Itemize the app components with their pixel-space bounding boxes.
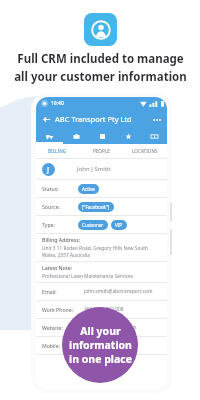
button[interactable]: Back	[41, 114, 52, 125]
button[interactable]: Tab 1	[36, 129, 63, 144]
staticText: PEOPLE	[93, 148, 110, 154]
button[interactable]: Work Phone:	[42, 301, 161, 318]
button[interactable]: Customer profile	[84, 13, 117, 46]
button[interactable]: Tab 5	[141, 129, 167, 144]
staticText: +61 1300 332 008	[84, 306, 124, 313]
button[interactable]: Website:	[42, 319, 161, 336]
button[interactable]: Email:	[42, 283, 161, 300]
staticText: Mobile:	[42, 342, 61, 349]
staticText: www.abctransport.com	[84, 324, 137, 331]
staticText: john.smith@abctransport.com	[84, 288, 153, 295]
staticText: Website:	[42, 324, 63, 331]
staticText: all your customer information	[14, 69, 187, 85]
staticText: All your	[80, 324, 121, 338]
staticText: Customer	[82, 222, 104, 228]
button[interactable]: Latest Note:	[42, 264, 161, 280]
button[interactable]: Mobile:	[42, 337, 161, 354]
staticText: Active	[82, 186, 95, 192]
staticText: Full CRM included to manage	[17, 51, 184, 67]
staticText: LOCATIONS	[132, 148, 158, 154]
button[interactable]: Tab 4	[115, 129, 141, 144]
button[interactable]: VIP	[115, 222, 123, 228]
staticText: Unit 3 11 Rodeo Road, Gregory Hills New …	[42, 245, 161, 259]
button[interactable]: Status:	[42, 180, 161, 197]
button[interactable]: More options	[151, 114, 162, 125]
staticText: 10:40	[51, 100, 64, 107]
staticText: in one place	[69, 352, 132, 366]
staticText: Latest Note:	[42, 264, 73, 271]
button[interactable]: Billing Address:	[42, 236, 161, 259]
button[interactable]: Source:	[42, 198, 161, 215]
button[interactable]: LOCATIONS	[123, 144, 167, 158]
button[interactable]: BILLING	[36, 144, 79, 158]
staticText: Source:	[42, 203, 61, 210]
button[interactable]: Tab 3	[89, 129, 115, 144]
button[interactable]: Tab 2	[63, 129, 89, 144]
button[interactable]: Active	[82, 186, 95, 192]
button[interactable]: PEOPLE	[79, 144, 123, 158]
staticText: ["Facebook"]	[82, 204, 110, 210]
staticText: Billing Address:	[42, 236, 81, 243]
staticText: information	[69, 338, 132, 352]
button[interactable]: ["Facebook"]	[82, 204, 110, 210]
staticText: John J Smith	[77, 165, 111, 173]
staticText: Work Phone:	[42, 306, 74, 313]
button[interactable]: J	[42, 159, 161, 179]
staticText: Type:	[42, 221, 55, 228]
staticText: J	[47, 165, 50, 175]
button[interactable]: Customer	[82, 222, 104, 228]
staticText: Email:	[42, 288, 57, 295]
button[interactable]: Type:	[42, 216, 161, 233]
staticText: Status:	[42, 185, 59, 192]
staticText: ABC Transport Pty Ltd	[55, 114, 132, 124]
staticText: BILLING	[48, 148, 67, 154]
staticText: VIP	[115, 222, 123, 228]
staticText: Professional Lawn Maintenance Services	[42, 273, 133, 280]
button[interactable]: All your	[62, 307, 138, 383]
